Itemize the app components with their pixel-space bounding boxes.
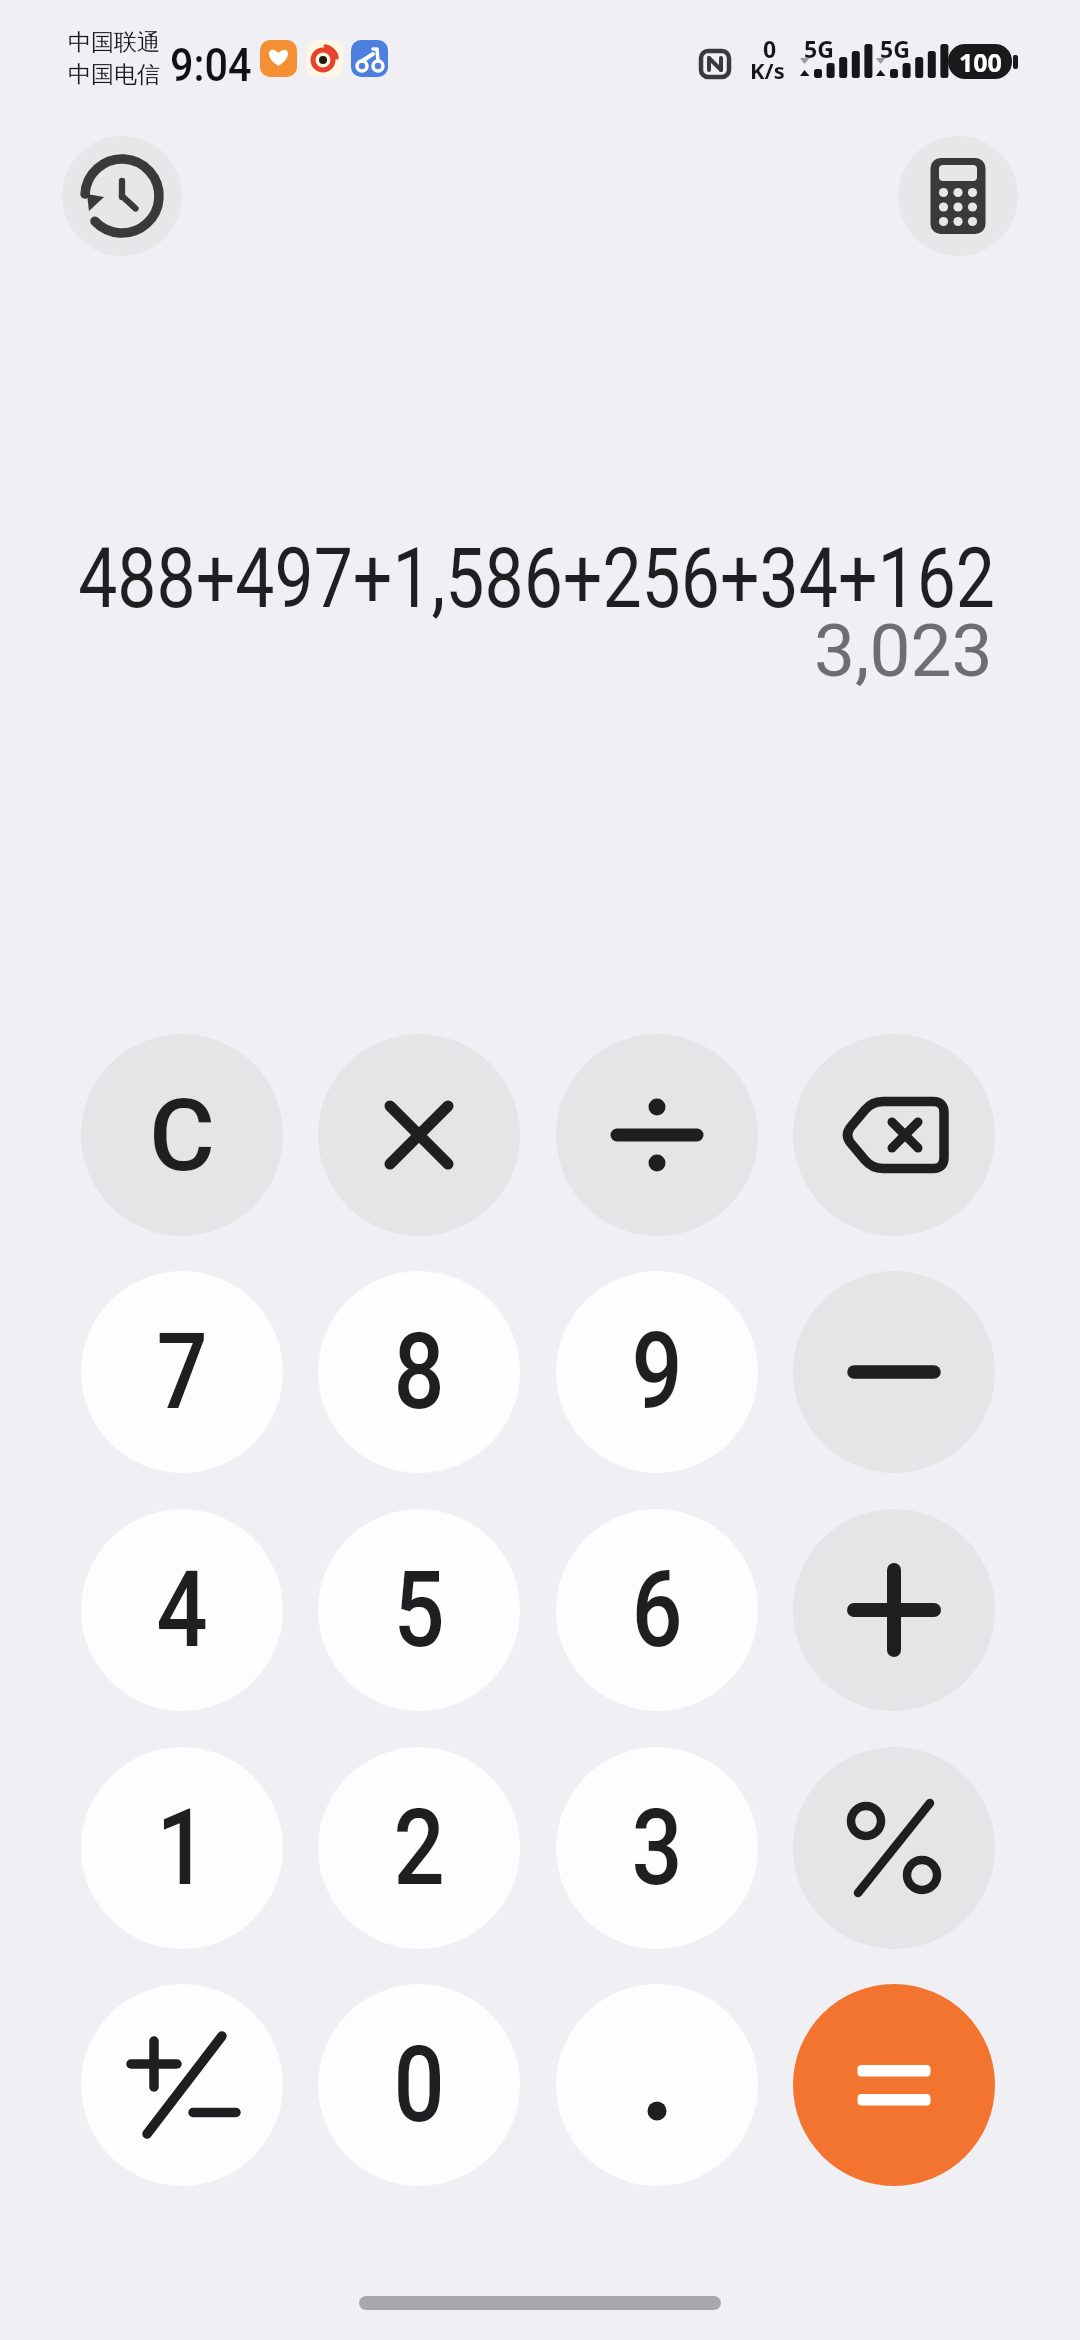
- button[interactable]: [556, 1984, 758, 2186]
- button[interactable]: 5: [318, 1509, 520, 1711]
- button[interactable]: 1: [81, 1747, 283, 1949]
- button[interactable]: [793, 1984, 995, 2186]
- button[interactable]: [793, 1271, 995, 1473]
- staticText: 2: [394, 1786, 445, 1910]
- button[interactable]: 0: [318, 1984, 520, 2186]
- button[interactable]: 9: [556, 1271, 758, 1473]
- button[interactable]: C: [81, 1034, 283, 1236]
- staticText: 1: [157, 1786, 208, 1910]
- button[interactable]: 3: [556, 1747, 758, 1949]
- button[interactable]: 2: [318, 1747, 520, 1949]
- button[interactable]: 8: [318, 1271, 520, 1473]
- staticText: 9:04: [170, 38, 252, 92]
- staticText: K/s: [750, 55, 785, 85]
- staticText: 4: [157, 1548, 208, 1672]
- staticText: 7: [157, 1310, 208, 1434]
- button[interactable]: 4: [81, 1509, 283, 1711]
- staticText: 3: [632, 1786, 683, 1910]
- staticText: 100: [959, 45, 1002, 79]
- button[interactable]: [793, 1034, 995, 1236]
- staticText: 488+497+1,586+256+34+162: [78, 529, 995, 627]
- button[interactable]: [318, 1034, 520, 1236]
- staticText: 8: [394, 1310, 445, 1434]
- button[interactable]: [556, 1034, 758, 1236]
- button[interactable]: [81, 1984, 283, 2186]
- staticText: 0: [763, 33, 777, 64]
- button[interactable]: [62, 136, 182, 256]
- button[interactable]: [793, 1747, 995, 1949]
- staticText: 5G: [880, 33, 910, 64]
- staticText: 5G: [804, 33, 834, 64]
- staticText: 0: [394, 2023, 445, 2147]
- staticText: C: [149, 1076, 215, 1194]
- button[interactable]: 7: [81, 1271, 283, 1473]
- button[interactable]: [793, 1509, 995, 1711]
- button[interactable]: [898, 136, 1018, 256]
- staticText: 5: [394, 1548, 445, 1672]
- staticText: 9: [632, 1310, 683, 1434]
- staticText: 中国电信: [68, 60, 160, 89]
- staticText: 6: [632, 1548, 683, 1672]
- button[interactable]: 6: [556, 1509, 758, 1711]
- staticText: 3,023: [814, 608, 993, 694]
- staticText: 中国联通: [68, 28, 160, 57]
